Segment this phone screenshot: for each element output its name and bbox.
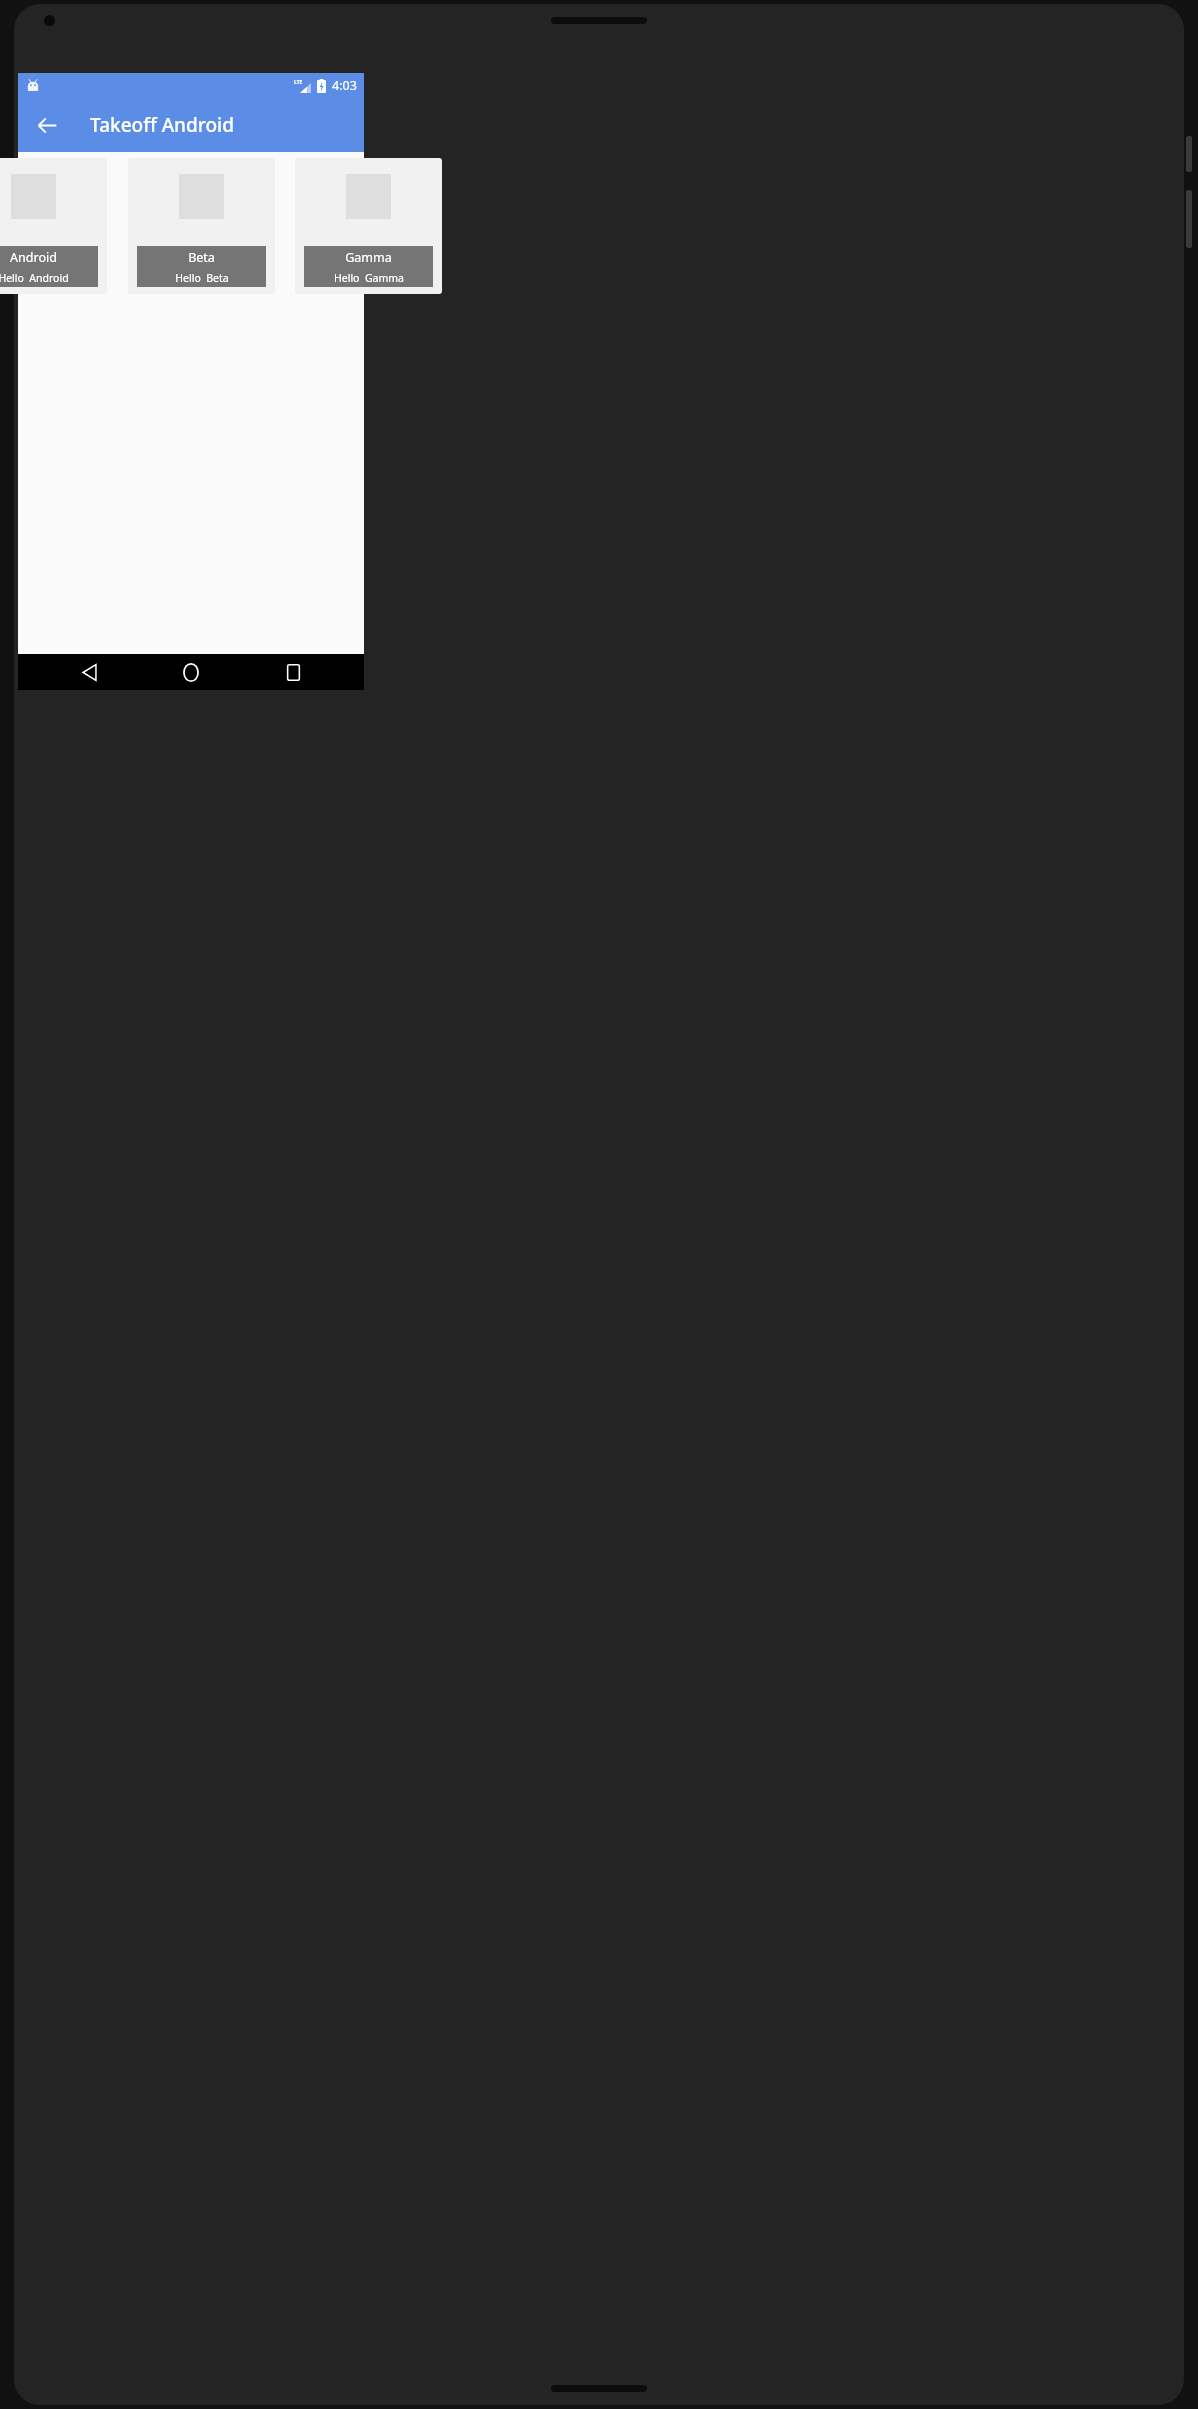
- button[interactable]: Recent apps: [262, 654, 324, 690]
- staticText: Android: [10, 249, 57, 266]
- staticText: Takeoff Android: [90, 112, 234, 138]
- staticText: LTE: [294, 79, 303, 86]
- button[interactable]: Beta: [128, 158, 275, 294]
- staticText: Gamma: [345, 249, 392, 266]
- staticText: Hello Android: [0, 271, 69, 285]
- button[interactable]: Back: [26, 104, 68, 146]
- staticText: Hello Beta: [175, 271, 229, 285]
- button[interactable]: Gamma: [295, 158, 442, 294]
- button[interactable]: Android: [0, 158, 107, 294]
- staticText: Hello Gamma: [334, 271, 404, 285]
- button[interactable]: Home: [160, 654, 222, 690]
- staticText: 4:03: [332, 77, 357, 94]
- button[interactable]: Back: [58, 654, 120, 690]
- staticText: Beta: [188, 249, 215, 266]
